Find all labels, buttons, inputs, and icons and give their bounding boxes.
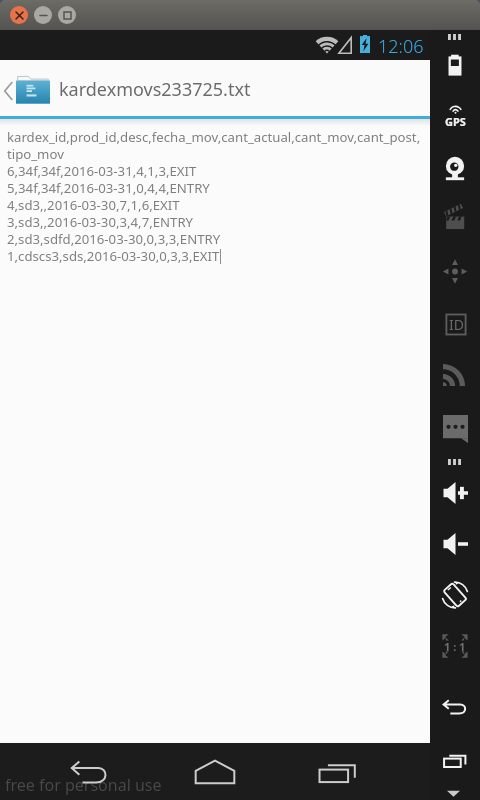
button[interactable]: Camera xyxy=(443,156,467,182)
staticText: 12:06 xyxy=(378,34,424,59)
staticText: free for personal use xyxy=(5,774,162,796)
button[interactable]: Maximize xyxy=(58,6,76,24)
button[interactable]: GPS xyxy=(441,103,469,128)
button[interactable]: Actual size xyxy=(440,632,470,660)
button[interactable]: Volume down xyxy=(443,533,468,555)
button[interactable]: Back xyxy=(442,698,468,716)
button[interactable]: Messages xyxy=(443,415,468,443)
staticText: 4,sd3,,2016-03-30,7,1,6,EXIT xyxy=(7,196,180,213)
button[interactable]: Collapse toolbar xyxy=(447,790,463,800)
button[interactable]: Accelerometer xyxy=(441,259,469,284)
button[interactable]: Rotate xyxy=(441,581,469,609)
staticText: 6,34f,34f,2016-03-31,4,1,3,EXIT xyxy=(7,162,197,179)
staticText: 3,sd3,,2016-03-30,3,4,7,ENTRY xyxy=(7,213,194,230)
staticText: 5,34f,34f,2016-03-31,0,4,4,ENTRY xyxy=(7,179,210,196)
staticText: GPS xyxy=(445,114,466,128)
button[interactable]: Recent apps xyxy=(442,751,468,771)
other: Navigate up xyxy=(4,82,13,100)
button[interactable]: Recent apps xyxy=(310,750,366,794)
button[interactable]: Navigate up xyxy=(0,60,430,116)
button[interactable]: Minimize xyxy=(34,6,52,24)
button[interactable]: Home xyxy=(187,750,243,794)
button[interactable]: Battery xyxy=(446,54,464,78)
staticText: kardexmovs233725.txt xyxy=(59,77,251,102)
button[interactable]: Volume up xyxy=(443,482,468,504)
button[interactable]: Record video xyxy=(444,206,466,230)
staticText: kardex_id,prod_id,desc,fecha_mov,cant_ac… xyxy=(7,128,421,145)
staticText: tipo_mov xyxy=(7,145,64,162)
button[interactable]: Network xyxy=(443,363,465,386)
button[interactable]: Close xyxy=(10,6,28,24)
staticText: ID xyxy=(449,315,464,334)
staticText: 1 : 1 xyxy=(444,639,466,654)
staticText: 2,sd3,sdfd,2016-03-30,0,3,3,ENTRY xyxy=(7,230,221,247)
button[interactable]: Back xyxy=(62,750,118,794)
staticText: 1,cdscs3,sds,2016-03-30,0,3,3,EXIT xyxy=(7,247,220,264)
button[interactable]: Identifiers xyxy=(444,312,468,337)
